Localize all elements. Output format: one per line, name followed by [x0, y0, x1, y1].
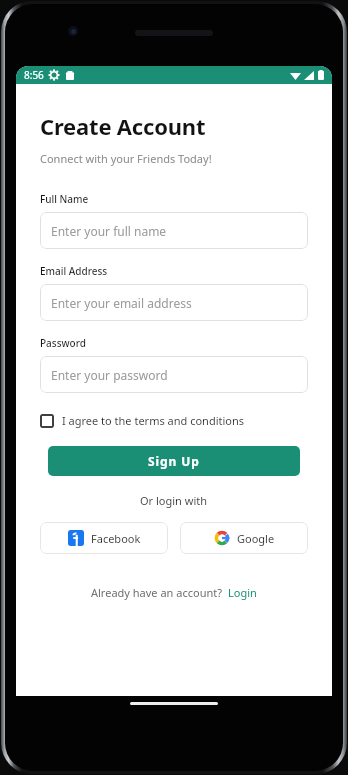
button[interactable]: Enter your email address [40, 284, 308, 321]
staticText: Facebook [91, 531, 141, 546]
button[interactable]: Enter your password [40, 356, 308, 393]
button[interactable]: Login [228, 585, 257, 600]
button[interactable]: Facebook [40, 522, 168, 554]
staticText: Google [237, 531, 275, 546]
staticText: Login [228, 585, 257, 600]
staticText: Enter your full name [51, 223, 167, 239]
button[interactable]: Sign Up [48, 446, 300, 476]
button[interactable]: Enter your full name [40, 212, 308, 249]
staticText: 8:56 [24, 68, 44, 82]
staticText: Full Name [40, 192, 89, 206]
staticText: Sign Up [148, 453, 200, 469]
staticText: Enter your email address [51, 295, 192, 311]
staticText: Or login with [140, 493, 208, 508]
staticText: Enter your password [51, 367, 168, 383]
staticText: Password [40, 336, 86, 350]
staticText: Create Account [40, 111, 206, 141]
staticText: Already have an account? [91, 585, 222, 600]
button[interactable]: I agree to the terms and conditions [40, 413, 308, 428]
staticText: Email Address [40, 264, 108, 278]
staticText: Connect with your Friends Today! [40, 151, 212, 166]
button[interactable]: Google [180, 522, 308, 554]
staticText: I agree to the terms and conditions [62, 413, 245, 428]
